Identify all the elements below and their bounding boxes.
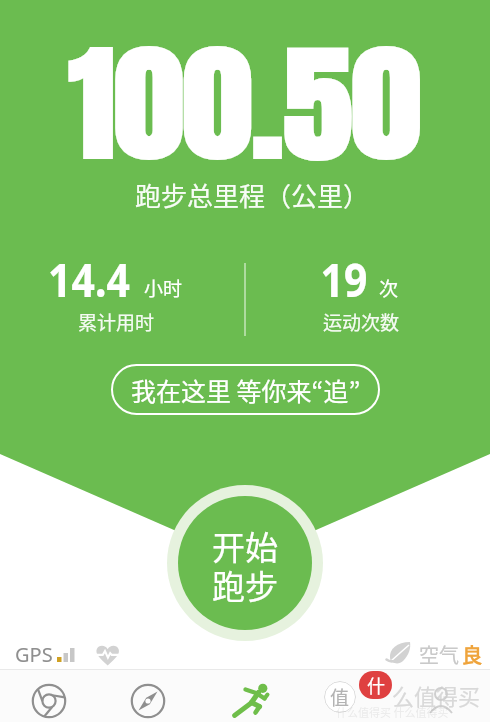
staticText: 值 — [330, 683, 350, 711]
staticText: 14.4 — [48, 247, 130, 311]
staticText: 良 — [462, 640, 482, 669]
staticText: 100.50 — [69, 9, 421, 199]
staticText: 跑步总里程（公里） — [135, 176, 370, 214]
button[interactable] — [423, 683, 459, 719]
button[interactable] — [231, 678, 275, 722]
staticText: 运动次数 — [323, 308, 400, 336]
staticText: 小时 — [144, 274, 183, 302]
staticText: 19 — [320, 247, 367, 311]
staticText: 开始 跑步 — [212, 522, 278, 609]
staticText: 我在这里 等你来“追” — [131, 372, 361, 408]
staticText: 什 — [367, 672, 385, 698]
staticText: 次 — [379, 274, 399, 302]
button[interactable]: 开始 跑步 — [167, 485, 323, 641]
button[interactable] — [130, 683, 166, 719]
staticText: GPS — [15, 641, 53, 668]
button[interactable]: 我在这里 等你来“追” — [111, 364, 380, 415]
staticText: 么值得买 — [392, 679, 481, 711]
staticText: 什么值得买 什么值得买 — [336, 704, 449, 720]
button[interactable] — [31, 683, 67, 719]
staticText: 空气 — [419, 640, 459, 669]
staticText: 累计用时 — [78, 308, 155, 336]
